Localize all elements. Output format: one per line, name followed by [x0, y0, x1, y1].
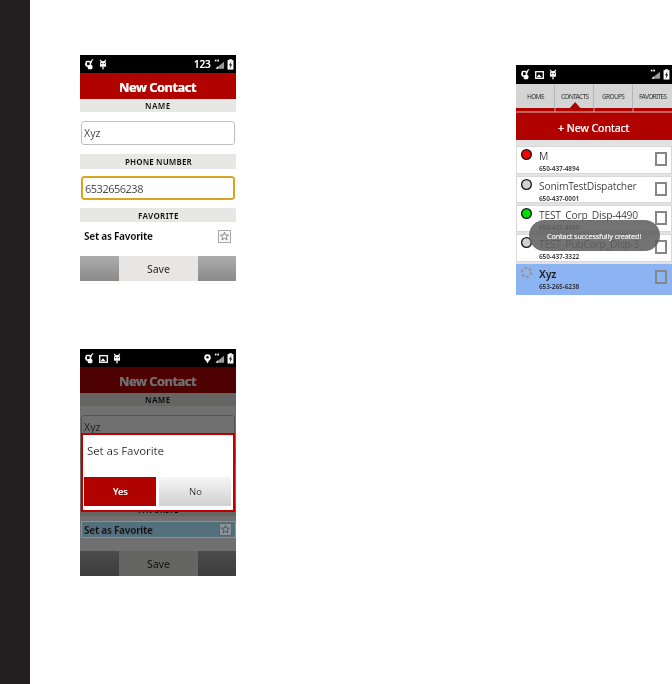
- staticText: FAVORITES: [639, 92, 667, 101]
- staticText: TEST_Corp_Disp-4490: [539, 208, 638, 222]
- button[interactable]: + New Contact: [516, 116, 672, 140]
- staticText: Contact successfully created!: [547, 231, 642, 241]
- staticText: 650-437-4490: [539, 223, 580, 232]
- staticText: Xyz: [84, 126, 101, 140]
- staticText: 650-437-3322: [539, 252, 580, 261]
- staticText: FAVORITE: [138, 504, 179, 515]
- button[interactable]: HOME: [516, 84, 555, 108]
- staticText: 123: [194, 57, 211, 71]
- staticText: Set as Favorite: [84, 523, 153, 537]
- staticText: + New Contact: [558, 121, 630, 135]
- staticText: 650-437-4894: [539, 164, 580, 173]
- button[interactable]: Yes: [84, 477, 156, 506]
- staticText: FAVORITE: [138, 210, 179, 221]
- staticText: 6532656238: [85, 181, 143, 196]
- staticText: GROUPS: [602, 92, 625, 101]
- staticText: NAME: [145, 100, 171, 111]
- staticText: PHONE NUMBER: [125, 156, 192, 167]
- button[interactable]: Xyz: [516, 264, 672, 295]
- button[interactable]: Save: [119, 256, 198, 281]
- staticText: TEST_PubCorp_Disp-3: [539, 237, 640, 251]
- button[interactable]: M: [516, 146, 672, 174]
- staticText: 650-437-0001: [539, 194, 580, 203]
- button[interactable]: Set as Favorite: [80, 222, 236, 250]
- staticText: Save: [147, 262, 170, 276]
- staticText: 6532656238: [85, 475, 143, 490]
- button[interactable]: Set as Favorite: [80, 516, 236, 544]
- staticText: NAME: [145, 394, 171, 405]
- button[interactable]: Set as Favorite: [81, 521, 236, 538]
- staticText: Set as Favorite: [87, 443, 164, 459]
- button[interactable]: TEST_PubCorp_Disp-3: [516, 234, 672, 262]
- staticText: New Contact: [119, 372, 197, 389]
- button[interactable]: GROUPS: [594, 84, 633, 108]
- button[interactable]: Save: [119, 551, 198, 576]
- staticText: CONTACTS: [561, 92, 589, 101]
- button[interactable]: CONTACTS: [555, 84, 594, 108]
- button[interactable]: FAVORITES: [633, 84, 672, 108]
- staticText: Set as Favorite: [84, 229, 153, 243]
- button[interactable]: TEST_Corp_Disp-4490: [516, 205, 672, 232]
- staticText: M: [539, 149, 549, 163]
- staticText: PHONE NUMBER: [125, 450, 192, 461]
- staticText: Xyz: [84, 420, 101, 434]
- staticText: SonimTestDispatcher: [539, 179, 637, 193]
- staticText: 653-265-6238: [539, 282, 580, 291]
- button[interactable]: SonimTestDispatcher: [516, 176, 672, 203]
- staticText: HOME: [527, 92, 544, 101]
- staticText: No: [189, 485, 202, 498]
- staticText: Yes: [113, 485, 128, 498]
- staticText: Set as Favorite: [84, 523, 153, 537]
- staticText: Xyz: [539, 267, 557, 281]
- staticText: Save: [147, 557, 170, 571]
- button[interactable]: No: [159, 477, 231, 506]
- staticText: New Contact: [119, 78, 197, 95]
